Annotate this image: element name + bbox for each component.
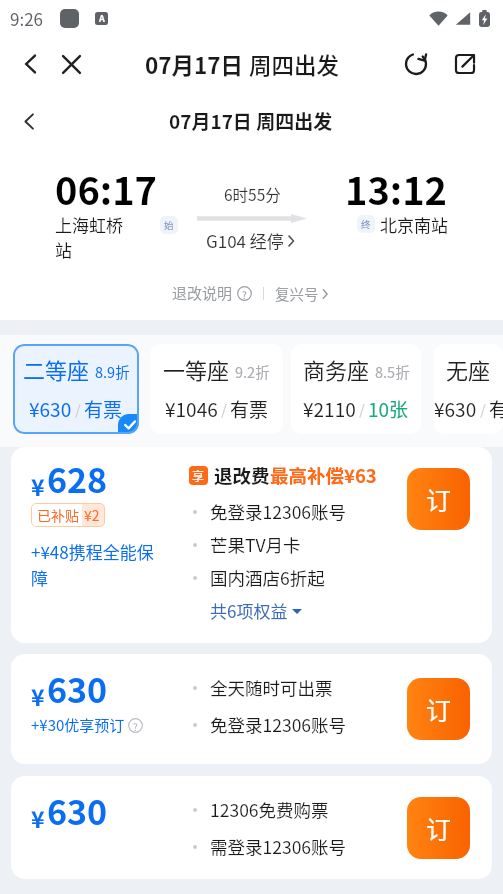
button[interactable]: 复兴号 xyxy=(275,283,331,304)
staticText: 8.9折 xyxy=(95,361,130,382)
staticText: / xyxy=(218,399,230,419)
staticText: 10张 xyxy=(368,395,409,423)
staticText: 需登录12306账号 xyxy=(210,834,347,859)
staticText: 周四出发 xyxy=(244,48,340,81)
staticText: 6时55分 xyxy=(224,183,281,205)
staticText: 最高补偿¥63 xyxy=(270,462,377,489)
staticText: 订 xyxy=(426,810,452,846)
staticText: 共6项权益 xyxy=(210,598,288,623)
staticText: 8.5折 xyxy=(375,361,410,382)
staticText: 06:17 xyxy=(55,161,158,216)
staticText: 商务座 xyxy=(303,353,370,385)
staticText: ¥2110 xyxy=(303,395,356,423)
button[interactable]: Share xyxy=(448,47,482,81)
button[interactable]: 预订 xyxy=(407,797,470,859)
staticText: 二等座 xyxy=(23,353,90,385)
staticText: 订 xyxy=(426,481,452,517)
staticText: 退改说明 xyxy=(172,282,233,304)
staticText: ¥ xyxy=(31,801,45,834)
staticText: 始 xyxy=(164,218,174,232)
button[interactable]: 预订 xyxy=(407,468,470,530)
staticText: 630 xyxy=(47,786,108,835)
button[interactable]: Close xyxy=(54,47,88,81)
staticText: 免登录12306账号 xyxy=(210,499,347,524)
staticText: 13:12 xyxy=(345,161,448,216)
staticText: 无座 xyxy=(446,353,491,385)
staticText: +¥48携程全能保障 xyxy=(31,539,168,590)
staticText: ¥630 xyxy=(434,395,477,423)
staticText: 有票 xyxy=(489,395,503,423)
staticText: ¥630 xyxy=(29,395,72,423)
button[interactable]: 一等座 xyxy=(150,344,283,434)
staticText: +¥30优享预订 xyxy=(31,714,125,736)
staticText: 终 xyxy=(361,217,371,231)
button[interactable]: 预订 xyxy=(407,678,470,740)
staticText: ¥1046 xyxy=(165,395,218,423)
staticText: 芒果TV月卡 xyxy=(210,532,301,557)
staticText: 全天随时可出票 xyxy=(210,675,333,700)
staticText: ? xyxy=(242,287,247,301)
staticText: A xyxy=(99,12,105,25)
button[interactable]: Back xyxy=(14,47,48,81)
staticText: 退改费 xyxy=(214,462,270,489)
staticText: / xyxy=(72,399,84,419)
staticText: ¥2 xyxy=(84,505,100,525)
staticText: 复兴号 xyxy=(275,283,319,304)
staticText: / xyxy=(477,399,489,419)
staticText: 上海虹桥站 xyxy=(55,212,137,262)
staticText: / xyxy=(356,399,368,419)
staticText: G104 经停 xyxy=(206,228,284,253)
staticText: 有票 xyxy=(230,395,269,423)
staticText: 07月17日 xyxy=(145,48,244,81)
staticText: 630 xyxy=(47,664,108,713)
button[interactable]: G104 经停 xyxy=(206,228,298,253)
staticText: 国内酒店6折起 xyxy=(210,565,325,590)
button[interactable]: 无座 xyxy=(434,344,503,434)
staticText: 免登录12306账号 xyxy=(210,712,347,737)
staticText: 已补贴 xyxy=(37,505,79,525)
staticText: 有票 xyxy=(84,395,123,423)
staticText: 订 xyxy=(426,691,452,727)
staticText: ? xyxy=(133,719,138,733)
button[interactable]: 退改说明 xyxy=(172,282,252,304)
button[interactable]: 商务座 xyxy=(291,344,421,434)
staticText: 享 xyxy=(192,467,205,484)
button[interactable]: Previous day xyxy=(14,106,44,136)
staticText: 628 xyxy=(47,454,108,503)
button[interactable]: Refresh xyxy=(399,47,433,81)
button[interactable]: 二等座 xyxy=(13,344,139,434)
staticText: ¥ xyxy=(31,679,45,712)
staticText: 07月17日 周四出发 xyxy=(169,107,333,135)
staticText: 北京南站 xyxy=(380,212,448,236)
staticText: 一等座 xyxy=(163,353,230,385)
staticText: 9:26 xyxy=(10,6,44,31)
button[interactable]: 共6项权益 xyxy=(210,598,302,623)
staticText: 12306免费购票 xyxy=(210,797,329,822)
staticText: ¥ xyxy=(31,469,45,502)
staticText: 9.2折 xyxy=(235,361,270,382)
